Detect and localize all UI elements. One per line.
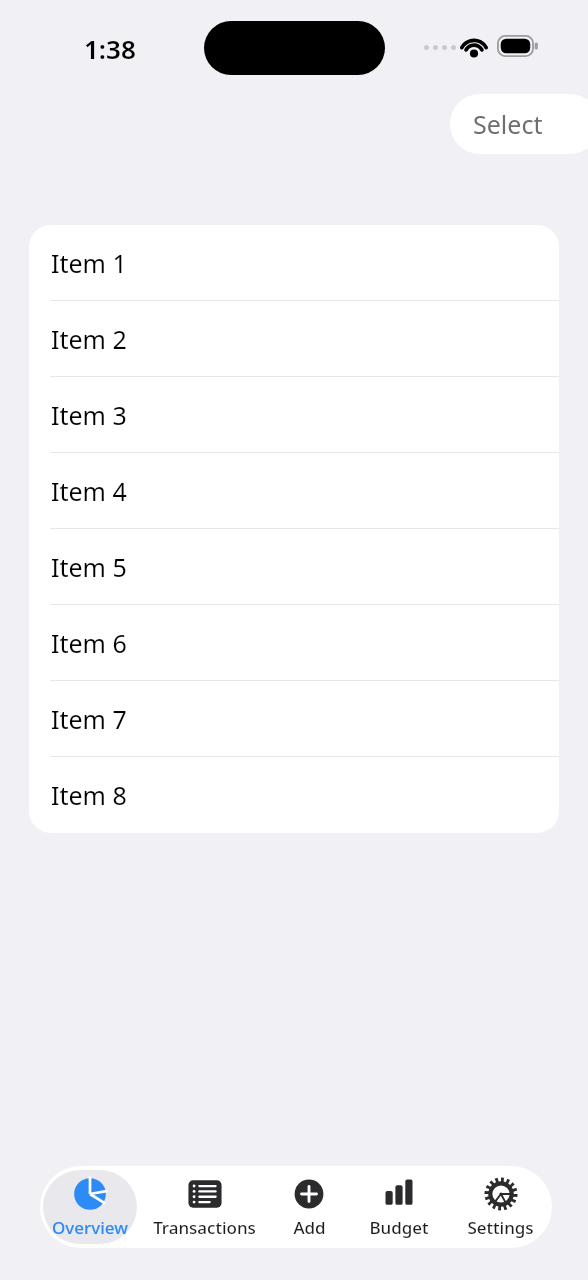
button[interactable]: Item 4 [29, 453, 559, 529]
button[interactable]: Transactions [143, 1170, 266, 1244]
staticText: Budget [369, 1216, 429, 1239]
button[interactable]: Item 8 [29, 757, 559, 833]
staticText: Add [293, 1216, 326, 1239]
staticText: Item 8 [51, 778, 127, 812]
staticText: Select [473, 107, 543, 141]
button[interactable]: Item 6 [29, 605, 559, 681]
button[interactable]: Add [272, 1170, 346, 1244]
button[interactable]: Item 7 [29, 681, 559, 757]
button[interactable]: Budget [352, 1170, 445, 1244]
staticText: Transactions [153, 1216, 256, 1239]
button[interactable]: Item 3 [29, 377, 559, 453]
staticText: 1:38 [84, 31, 136, 66]
staticText: Item 1 [51, 246, 127, 280]
staticText: Settings [467, 1216, 534, 1239]
button[interactable]: Select [450, 94, 588, 154]
button[interactable]: Item 2 [29, 301, 559, 377]
staticText: Item 6 [51, 626, 127, 660]
staticText: Item 2 [51, 322, 127, 356]
button[interactable]: Item 1 [29, 225, 559, 301]
button[interactable]: Item 5 [29, 529, 559, 605]
staticText: Item 5 [51, 550, 127, 584]
button[interactable]: Overview [43, 1170, 137, 1244]
staticText: Item 3 [51, 398, 127, 432]
button[interactable]: Settings [451, 1170, 549, 1244]
staticText: Overview [52, 1216, 128, 1239]
staticText: Item 4 [51, 474, 127, 508]
staticText: Item 7 [51, 702, 127, 736]
